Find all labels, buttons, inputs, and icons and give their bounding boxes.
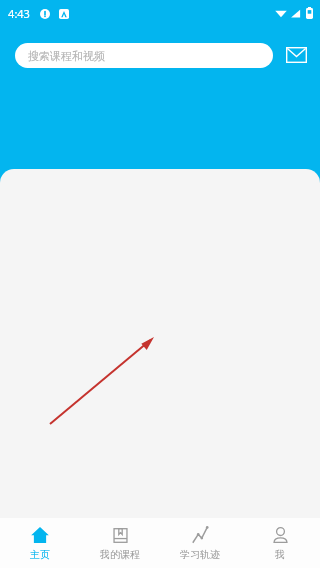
staticText: 4:43: [8, 6, 30, 21]
staticText: 我: [275, 548, 285, 561]
staticText: 主页: [30, 548, 50, 561]
staticText: 我的课程: [100, 548, 140, 561]
staticText: 学习轨迹: [180, 548, 220, 561]
button[interactable]: 我的课程: [80, 518, 160, 568]
button[interactable]: Messages: [283, 42, 309, 68]
button[interactable]: 搜索课程和视频: [15, 43, 273, 68]
button[interactable]: 我: [240, 518, 320, 568]
staticText: 搜索课程和视频: [28, 49, 105, 63]
button[interactable]: 主页: [0, 518, 80, 568]
button[interactable]: 学习轨迹: [160, 518, 240, 568]
